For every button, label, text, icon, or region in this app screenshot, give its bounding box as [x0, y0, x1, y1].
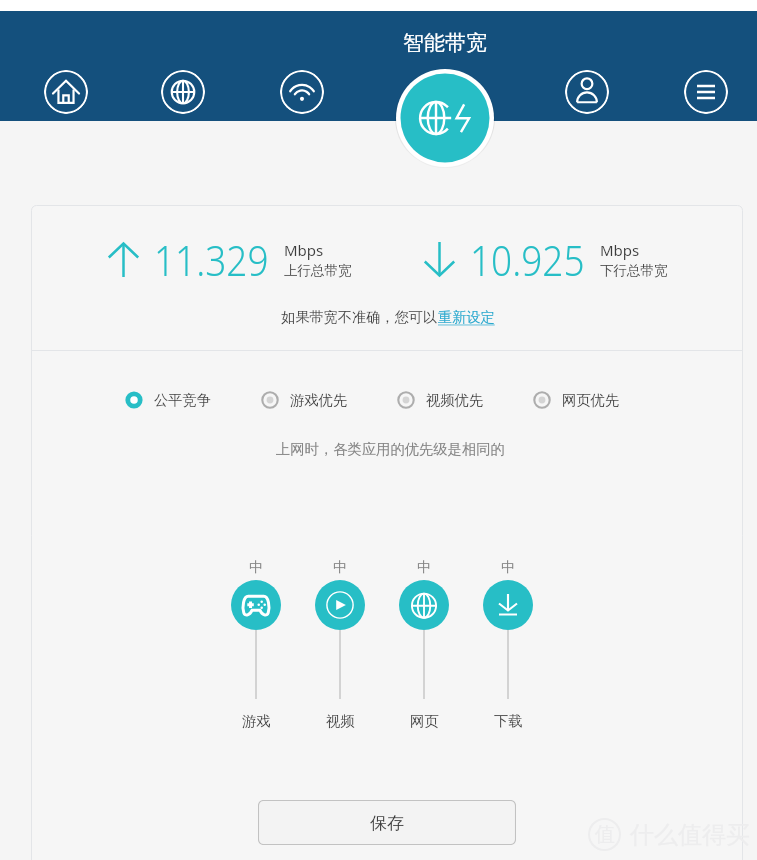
staticText: Mbps: [284, 240, 324, 260]
button[interactable]: 公平竞争: [125, 391, 212, 409]
button[interactable]: 游戏: [231, 580, 281, 630]
staticText: 视频优先: [426, 391, 484, 409]
staticText: 中: [417, 559, 431, 577]
staticText: 中: [501, 559, 515, 577]
staticText: 视频: [326, 712, 355, 730]
staticText: 中: [249, 559, 263, 577]
staticText: 10.925: [470, 231, 585, 288]
staticText: 值: [595, 822, 615, 847]
staticText: 游戏: [242, 712, 271, 730]
staticText: 智能带宽: [403, 30, 487, 56]
staticText: 上行总带宽: [284, 262, 352, 279]
button[interactable]: Menu: [684, 70, 728, 114]
button[interactable]: 网页优先: [533, 391, 620, 409]
button[interactable]: Smart bandwidth: [395, 68, 495, 168]
staticText: 网页: [410, 712, 439, 730]
staticText: Mbps: [600, 240, 640, 260]
button[interactable]: 网页: [399, 580, 449, 630]
button[interactable]: 视频: [315, 580, 365, 630]
button[interactable]: Internet: [161, 70, 205, 114]
staticText: 公平竞争: [154, 391, 212, 409]
button[interactable]: 游戏优先: [261, 391, 348, 409]
button[interactable]: 下载: [483, 580, 533, 630]
staticText: 网页优先: [562, 391, 620, 409]
staticText: 什么值得买: [630, 820, 750, 850]
staticText: 中: [333, 559, 347, 577]
staticText: 保存: [370, 813, 404, 834]
button[interactable]: Home: [44, 70, 88, 114]
staticText: 重新设定: [438, 308, 495, 326]
button[interactable]: Account: [565, 70, 609, 114]
staticText: 上网时，各类应用的优先级是相同的: [276, 440, 505, 458]
button[interactable]: 重新设定: [438, 308, 495, 326]
button[interactable]: 保存: [258, 800, 516, 845]
staticText: 如果带宽不准确，您可以: [281, 308, 438, 326]
staticText: 游戏优先: [290, 391, 348, 409]
staticText: 下行总带宽: [600, 262, 668, 279]
staticText: 11.329: [154, 231, 269, 288]
button[interactable]: Wi-Fi: [280, 70, 324, 114]
staticText: 下载: [494, 712, 523, 730]
button[interactable]: 视频优先: [397, 391, 484, 409]
